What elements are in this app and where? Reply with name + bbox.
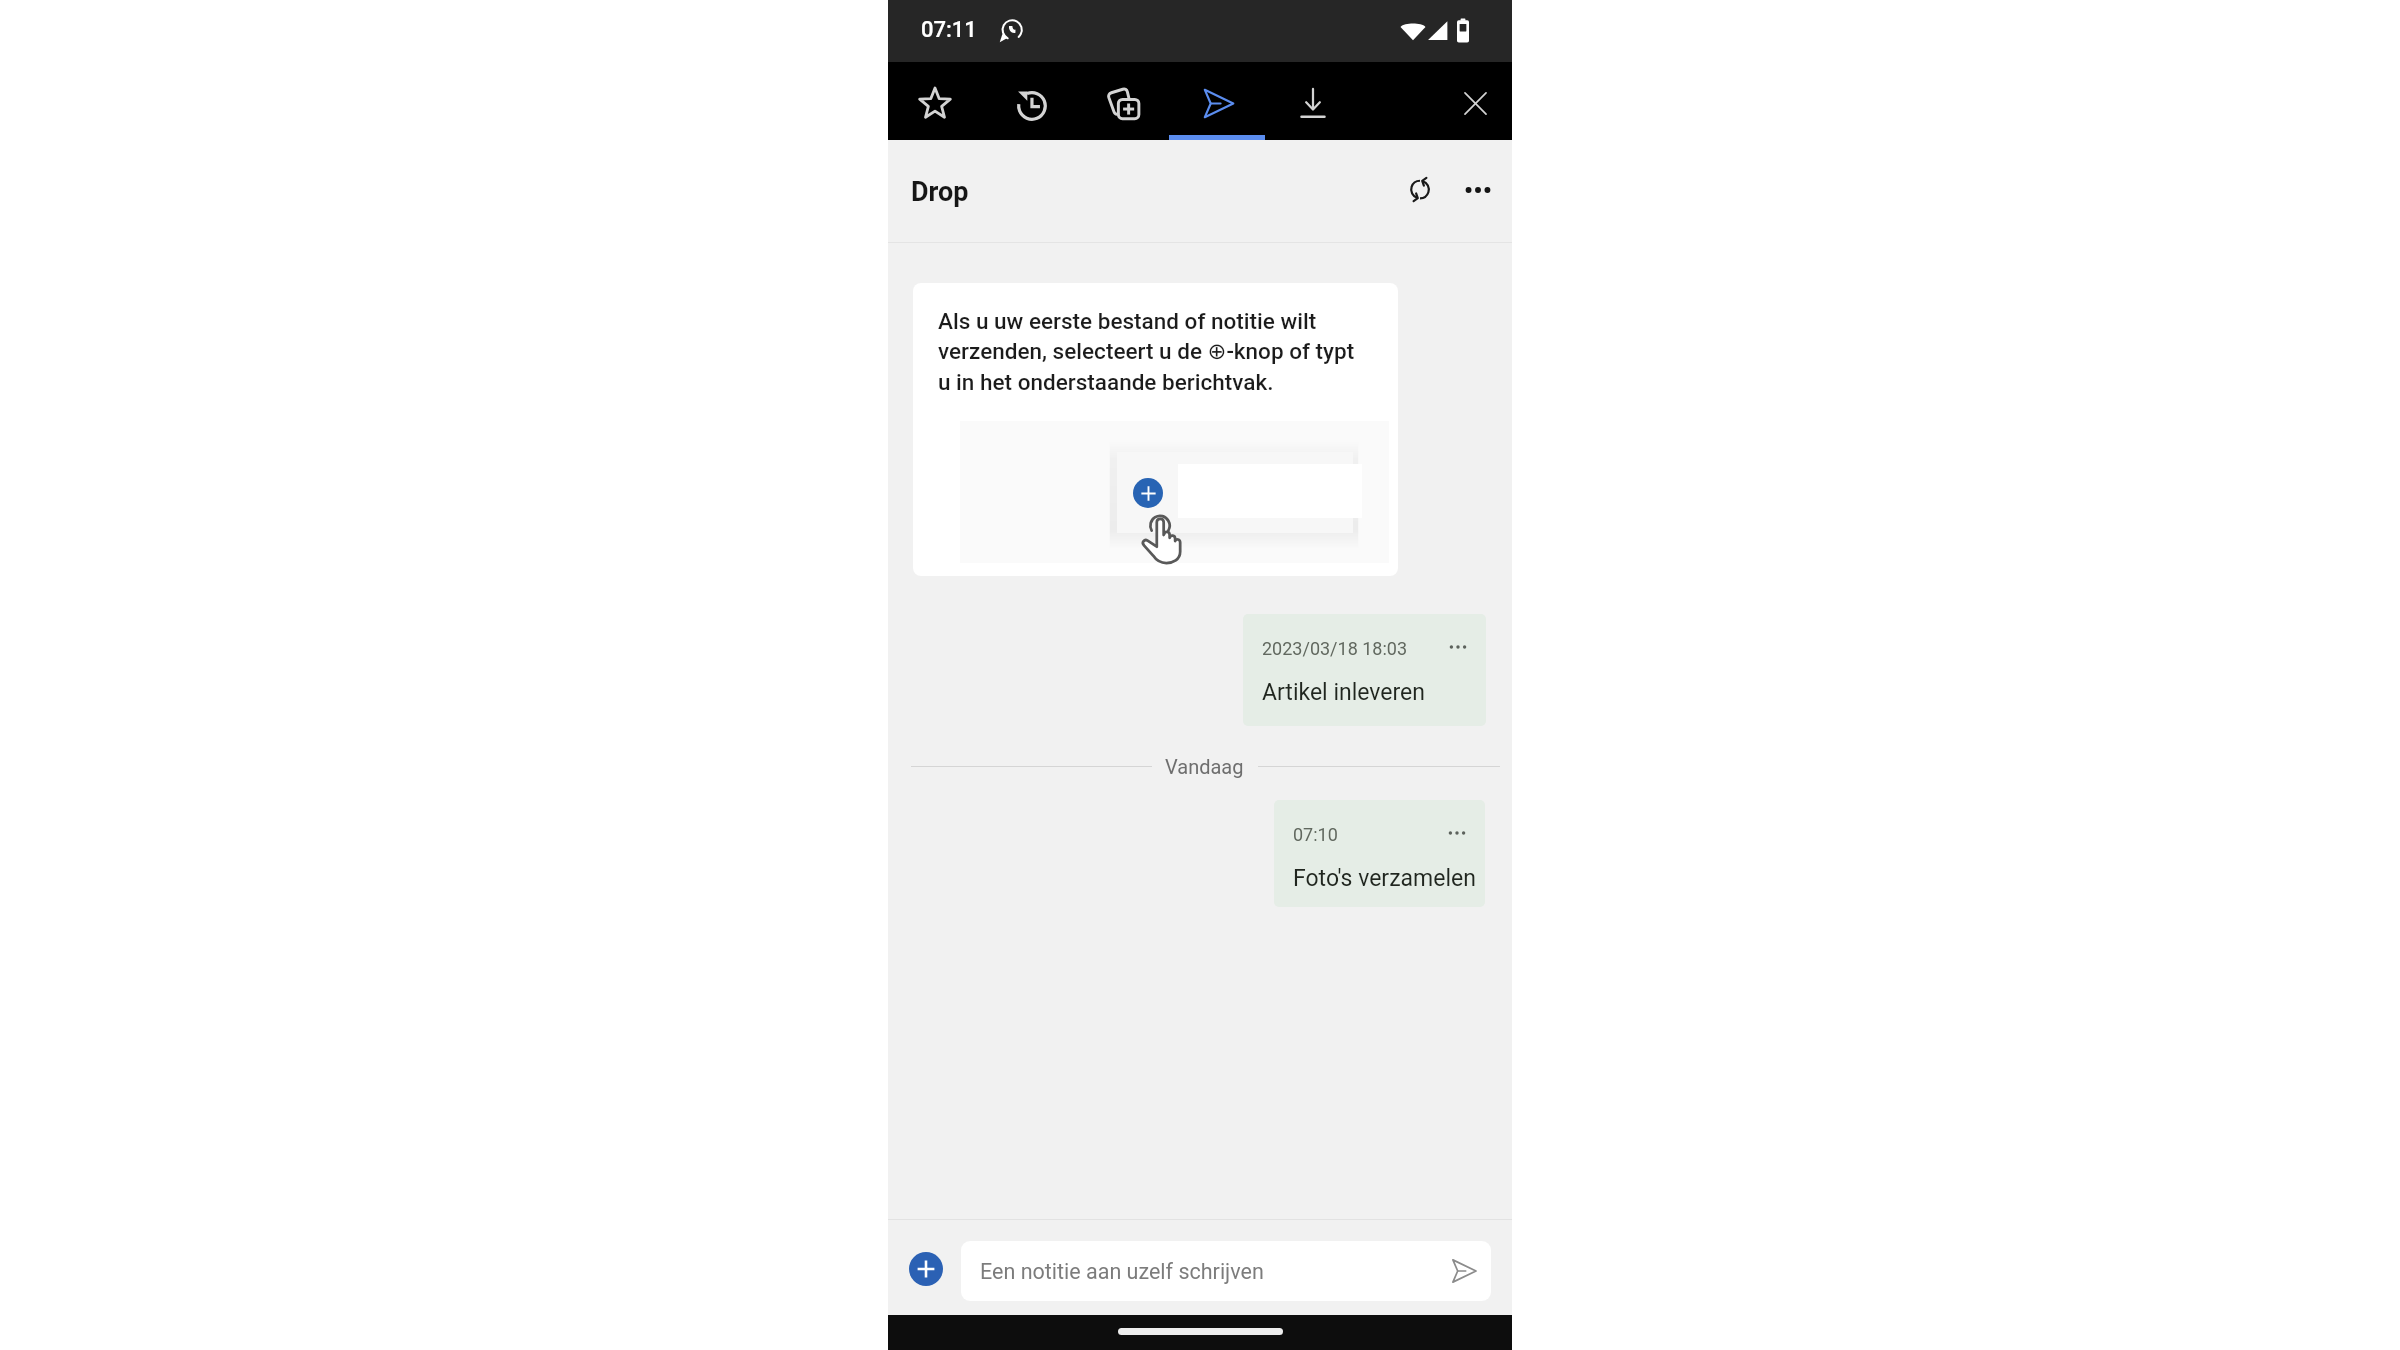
button[interactable]: Message options [1435,815,1479,851]
button[interactable]: Message options [1436,629,1480,665]
button[interactable]: 07:10 [1274,800,1485,907]
button[interactable]: Send [1182,67,1254,139]
button[interactable]: More options [1452,164,1504,216]
staticText: 07:10 [1293,824,1338,845]
button[interactable]: Een notitie aan uzelf schrijven [961,1241,1491,1301]
staticText: 2023/03/18 18:03 [1262,638,1408,659]
staticText: 07:11 [921,17,977,43]
staticText: Drop [911,176,969,208]
button[interactable]: History [993,67,1065,139]
staticText: Foto's verzamelen [1293,865,1476,892]
staticText: Als u uw eerste bestand of notitie wilt … [938,308,1368,396]
button[interactable]: Close [1439,67,1511,139]
button[interactable]: 2023/03/18 18:03 [1243,614,1486,726]
staticText: Artikel inleveren [1262,679,1426,706]
button[interactable]: Add [909,1252,943,1286]
button[interactable]: Als u uw eerste bestand of notitie wilt … [913,283,1398,576]
button[interactable]: Favourite [899,67,971,139]
button[interactable]: Sync [1394,163,1446,215]
staticText: Een notitie aan uzelf schrijven [980,1259,1264,1284]
button[interactable]: Add attachment [1133,478,1163,508]
button[interactable]: New collection [1087,67,1159,139]
staticText: Vandaag [1165,755,1244,778]
button[interactable]: Download [1277,67,1349,139]
button[interactable]: Send [1441,1248,1487,1294]
